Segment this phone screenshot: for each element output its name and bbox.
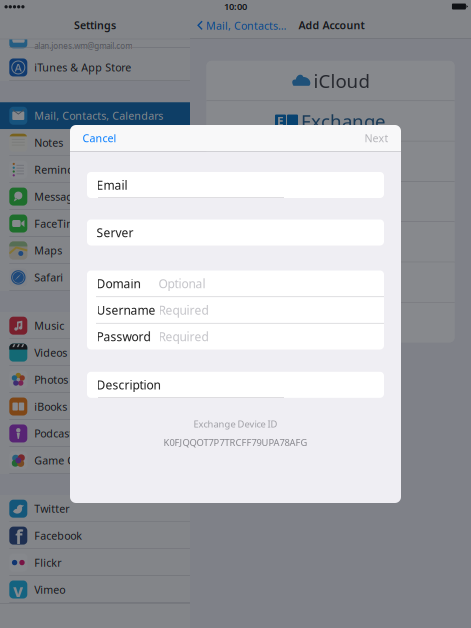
staticText: Safari: [34, 270, 63, 284]
button[interactable]: Music: [0, 312, 190, 339]
staticText: Password: [96, 328, 150, 344]
button[interactable]: Domain: [87, 270, 384, 296]
button[interactable]: A: [0, 54, 190, 81]
button[interactable]: Cancel: [80, 126, 120, 150]
staticText: Cancel: [83, 131, 117, 145]
button[interactable]: Server: [87, 219, 384, 245]
staticText: Optional: [158, 275, 205, 291]
staticText: oogle: [314, 149, 363, 174]
button[interactable]: iCloud: [0, 39, 190, 54]
button[interactable]: Username: [87, 297, 384, 323]
button[interactable]: YAHOO!: [206, 182, 454, 221]
button[interactable]: Game Center: [0, 447, 190, 474]
staticText: Aol.: [314, 230, 350, 254]
staticText: Flickr: [34, 555, 61, 570]
button[interactable]: Next: [361, 126, 391, 150]
button[interactable]: Messages: [0, 183, 190, 210]
button[interactable]: FaceTime: [0, 210, 190, 237]
button[interactable]: iCloud: [206, 61, 454, 101]
button[interactable]: Notes: [0, 129, 190, 156]
staticText: Domain: [96, 275, 140, 291]
staticText: Required: [158, 302, 208, 318]
button[interactable]: Outlook.com: [206, 262, 454, 302]
staticText: Mail, Contacts…: [206, 18, 286, 33]
staticText: Facebook: [34, 528, 82, 543]
button[interactable]: Maps: [0, 237, 190, 264]
staticText: iCloud: [313, 68, 369, 93]
staticText: Mail, Contacts, Calendars: [34, 109, 163, 123]
staticText: Other: [305, 310, 358, 335]
staticText: Outlook.com: [275, 270, 388, 295]
button[interactable]: Description: [87, 372, 384, 398]
staticText: Email: [96, 177, 127, 193]
staticText: Messages: [34, 189, 84, 204]
staticText: 10:00: [224, 0, 247, 13]
staticText: Next: [364, 131, 388, 145]
staticText: FaceTime: [34, 216, 82, 231]
button[interactable]: Other: [206, 303, 454, 342]
staticText: Settings: [74, 18, 116, 32]
staticText: A: [15, 60, 22, 75]
staticText: iTunes & App Store: [34, 60, 131, 75]
staticText: alan.jones.wm@gmail.com: [34, 41, 132, 51]
button[interactable]: Safari: [0, 264, 190, 291]
button[interactable]: f: [0, 522, 190, 549]
button[interactable]: Flickr: [0, 549, 190, 576]
staticText: Twitter: [34, 502, 69, 516]
staticText: Videos: [34, 345, 67, 360]
button[interactable]: v: [0, 576, 190, 603]
staticText: G: [297, 149, 311, 174]
button[interactable]: Podcasts: [0, 420, 190, 447]
staticText: E: [277, 113, 284, 129]
staticText: Maps: [34, 243, 62, 258]
button[interactable]: Email: [87, 172, 384, 198]
staticText: Reminders: [34, 162, 89, 177]
button[interactable]: Mail, Contacts, Calendars: [0, 102, 190, 129]
button[interactable]: Aol.: [206, 222, 454, 262]
staticText: Game Center: [34, 453, 101, 467]
staticText: Username: [96, 302, 155, 318]
staticText: Server: [96, 224, 133, 240]
staticText: Vimeo: [34, 582, 65, 597]
button[interactable]: Reminders: [0, 156, 190, 183]
staticText: v: [13, 579, 23, 602]
staticText: Photos: [34, 372, 68, 387]
staticText: YAHOO!: [295, 189, 368, 214]
staticText: iBooks: [34, 399, 67, 414]
staticText: Exchange Device ID: [193, 418, 277, 430]
staticText: Required: [158, 328, 208, 344]
button[interactable]: G: [206, 141, 454, 181]
button[interactable]: Photos: [0, 366, 190, 393]
button[interactable]: Videos: [0, 339, 190, 366]
button[interactable]: E: [206, 101, 454, 141]
staticText: K0FJQQOT7P7TRCFF79UPA78AFG: [163, 436, 307, 449]
button[interactable]: Twitter: [0, 495, 190, 522]
staticText: Notes: [34, 136, 63, 150]
button[interactable]: Password: [87, 323, 384, 349]
staticText: f: [15, 525, 22, 549]
button[interactable]: iBooks: [0, 393, 190, 420]
staticText: Music: [34, 319, 64, 333]
staticText: Podcasts: [34, 426, 78, 441]
button[interactable]: Mail, Contacts…: [197, 12, 286, 39]
staticText: Description: [96, 377, 160, 393]
staticText: Exchange: [301, 109, 386, 133]
staticText: Add Account: [299, 18, 365, 32]
